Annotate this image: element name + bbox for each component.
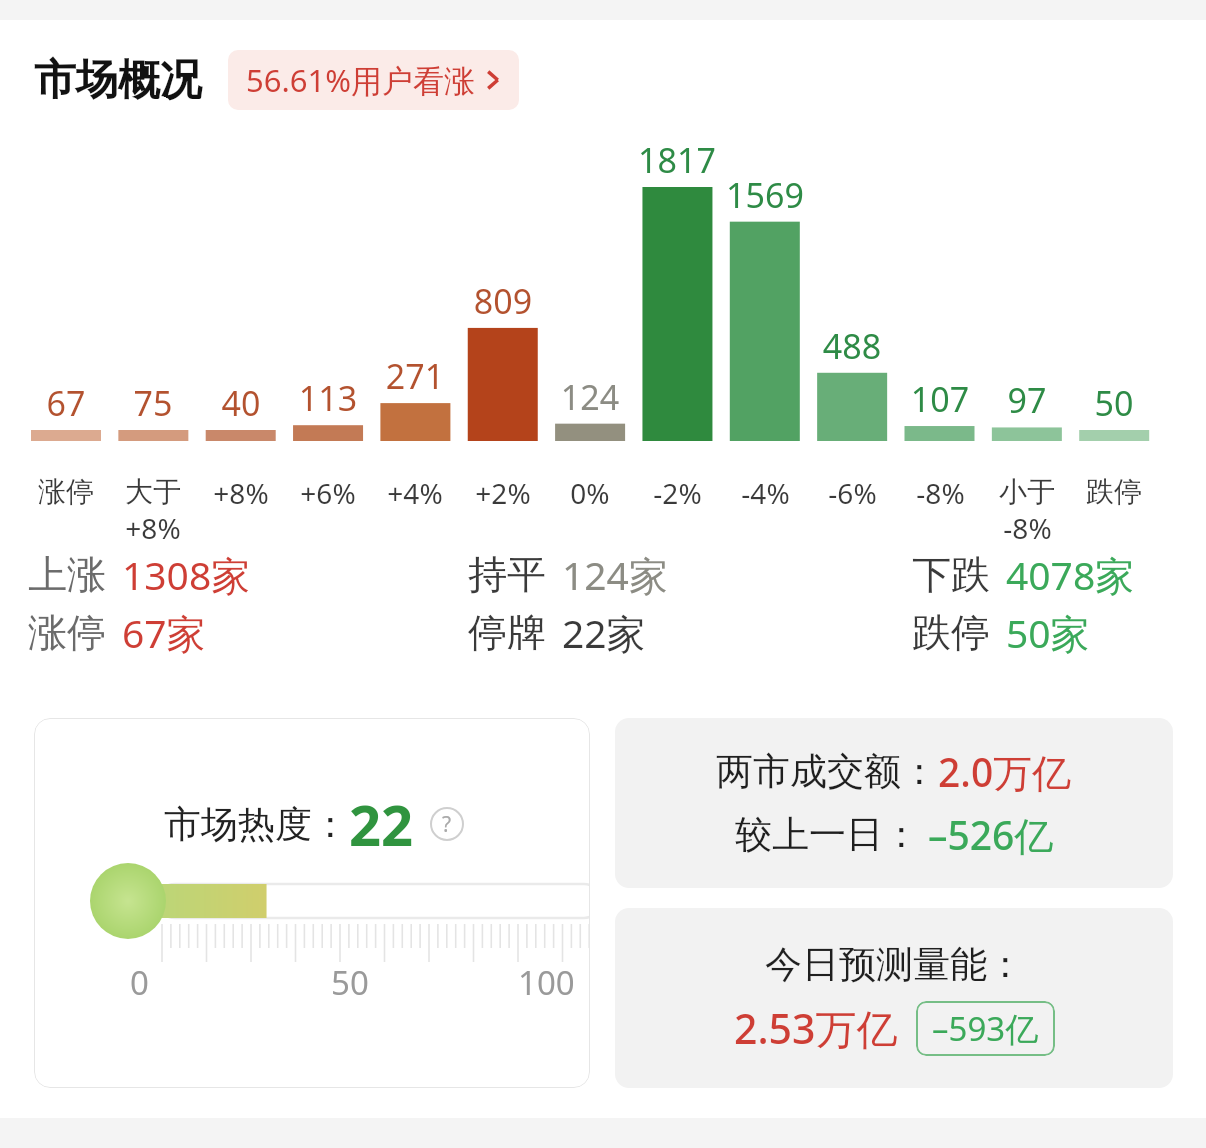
staticText: 市场热度：	[164, 801, 349, 848]
button[interactable]: 56.61%用户看涨	[228, 50, 519, 110]
staticText: 0	[130, 960, 149, 1005]
staticText: 40	[181, 380, 301, 426]
staticText: –526亿	[928, 808, 1054, 861]
staticText: +8%	[213, 474, 269, 512]
staticText: 809	[443, 278, 563, 324]
staticText: 50	[1054, 380, 1174, 426]
staticText: 2.53万亿	[734, 1000, 898, 1056]
staticText: 56.61%用户看涨	[246, 59, 475, 101]
staticText: 97	[967, 377, 1087, 423]
button[interactable]: 今日预测量能：	[615, 908, 1173, 1088]
staticText: 涨停	[28, 608, 106, 657]
staticText: 75	[93, 380, 213, 426]
staticText: -4%	[741, 474, 790, 512]
staticText: 大于	[125, 474, 181, 509]
staticText: 小于	[999, 474, 1055, 509]
staticText: -8%	[1003, 509, 1052, 547]
staticText: 1569	[705, 172, 825, 218]
button[interactable]: 市场热度：	[34, 718, 590, 1088]
staticText: 124	[530, 374, 650, 420]
staticText: 停牌	[468, 608, 546, 657]
staticText: 22	[349, 786, 414, 862]
staticText: 1817	[617, 137, 737, 183]
staticText: 较上一日：	[735, 811, 920, 858]
staticText: ?	[442, 810, 452, 839]
button[interactable]: 持平	[468, 548, 668, 601]
staticText: 4078家	[1006, 548, 1135, 601]
button[interactable]: 涨停	[28, 606, 206, 659]
button[interactable]: 下跌	[912, 548, 1135, 601]
staticText: 1308家	[122, 548, 251, 601]
staticText: 下跌	[912, 550, 990, 599]
button[interactable]: 两市成交额：	[615, 718, 1173, 888]
staticText: –593亿	[932, 1006, 1039, 1051]
staticText: -6%	[828, 474, 877, 512]
staticText: 100	[518, 960, 575, 1005]
staticText: 124家	[562, 548, 668, 601]
staticText: +2%	[475, 474, 531, 512]
staticText: 2.0万亿	[938, 745, 1072, 798]
staticText: +4%	[387, 474, 443, 512]
staticText: 271	[355, 353, 475, 399]
staticText: 488	[792, 323, 912, 369]
button[interactable]: 跌停	[912, 606, 1090, 659]
staticText: 持平	[468, 550, 546, 599]
staticText: 跌停	[1086, 474, 1142, 509]
staticText: 67	[6, 380, 126, 426]
staticText: 今日预测量能：	[765, 941, 1024, 988]
staticText: +6%	[300, 474, 356, 512]
staticText: 113	[268, 375, 388, 421]
staticText: 跌停	[912, 608, 990, 657]
staticText: -8%	[916, 474, 965, 512]
button[interactable]: Help about market heat	[430, 807, 464, 841]
staticText: 市场概况	[34, 54, 202, 107]
staticText: 22家	[562, 606, 646, 659]
staticText: 107	[880, 376, 1000, 422]
staticText: 50	[331, 960, 369, 1005]
staticText: 两市成交额：	[716, 748, 938, 795]
staticText: +8%	[125, 509, 181, 547]
staticText: -2%	[653, 474, 702, 512]
staticText: 上涨	[28, 550, 106, 599]
staticText: 67家	[122, 606, 206, 659]
staticText: 50家	[1006, 606, 1090, 659]
button[interactable]: 上涨	[28, 548, 251, 601]
staticText: 0%	[570, 474, 610, 512]
button[interactable]: 停牌	[468, 606, 646, 659]
staticText: 涨停	[38, 474, 94, 509]
